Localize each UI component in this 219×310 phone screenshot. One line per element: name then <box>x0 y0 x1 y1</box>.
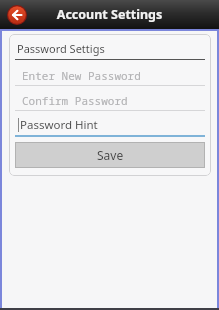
staticText: Password Settigs <box>17 41 105 56</box>
button[interactable]: Password Hint <box>15 115 205 137</box>
staticText: Confirm Password <box>22 93 128 108</box>
button[interactable]: Back <box>7 5 27 25</box>
button[interactable]: Save <box>15 142 205 168</box>
staticText: Account Settings <box>0 6 219 23</box>
staticText: Save <box>97 147 124 163</box>
staticText: Enter New Password <box>22 68 141 83</box>
button[interactable]: Confirm Password <box>15 90 205 111</box>
staticText: Password Hint <box>20 117 98 133</box>
button[interactable]: Enter New Password <box>15 65 205 86</box>
